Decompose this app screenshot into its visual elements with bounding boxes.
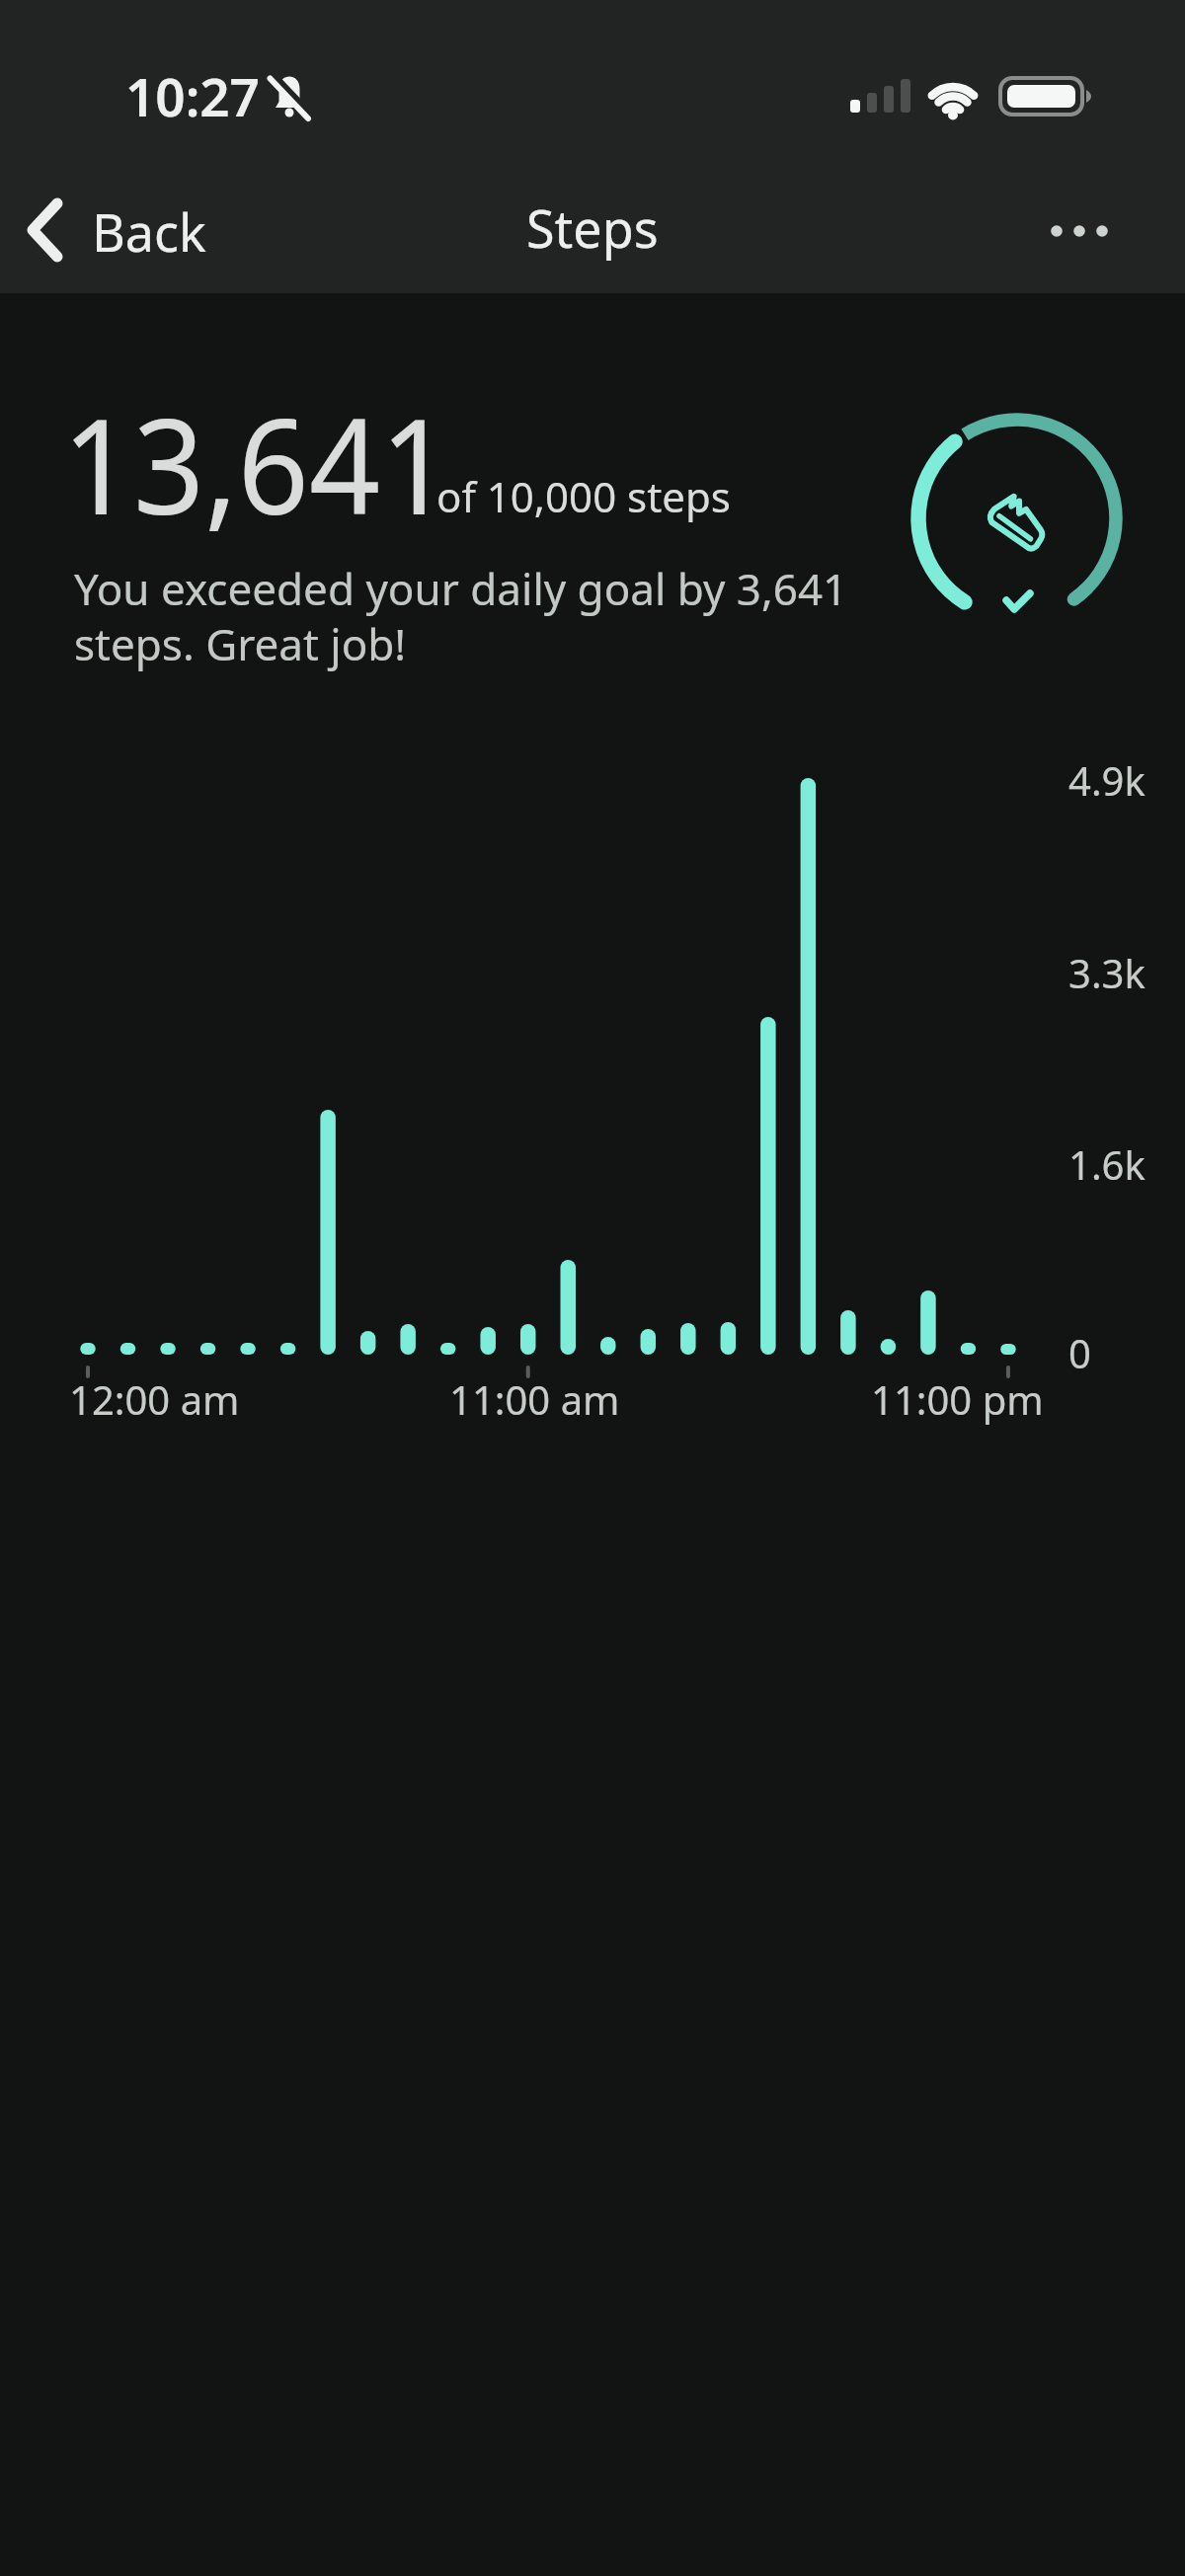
staticText: 13,641	[62, 373, 452, 554]
staticText: 1.6k	[1068, 1137, 1145, 1191]
staticText: 4.9k	[1068, 753, 1145, 807]
staticText: You exceeded your daily goal by 3,641 st…	[74, 559, 848, 673]
staticText: 10:27	[125, 60, 260, 131]
staticText: 3.3k	[1068, 946, 1145, 999]
staticText: Back	[92, 196, 206, 267]
button[interactable]	[1043, 217, 1116, 245]
button[interactable]: Back	[18, 188, 215, 273]
staticText: of 10,000 steps	[436, 468, 731, 524]
staticText: Steps	[526, 193, 659, 263]
staticText: 11:00 am	[449, 1372, 620, 1426]
staticText: 11:00 pm	[871, 1372, 1044, 1426]
staticText: 0	[1068, 1326, 1091, 1379]
staticText: 12:00 am	[69, 1372, 240, 1426]
